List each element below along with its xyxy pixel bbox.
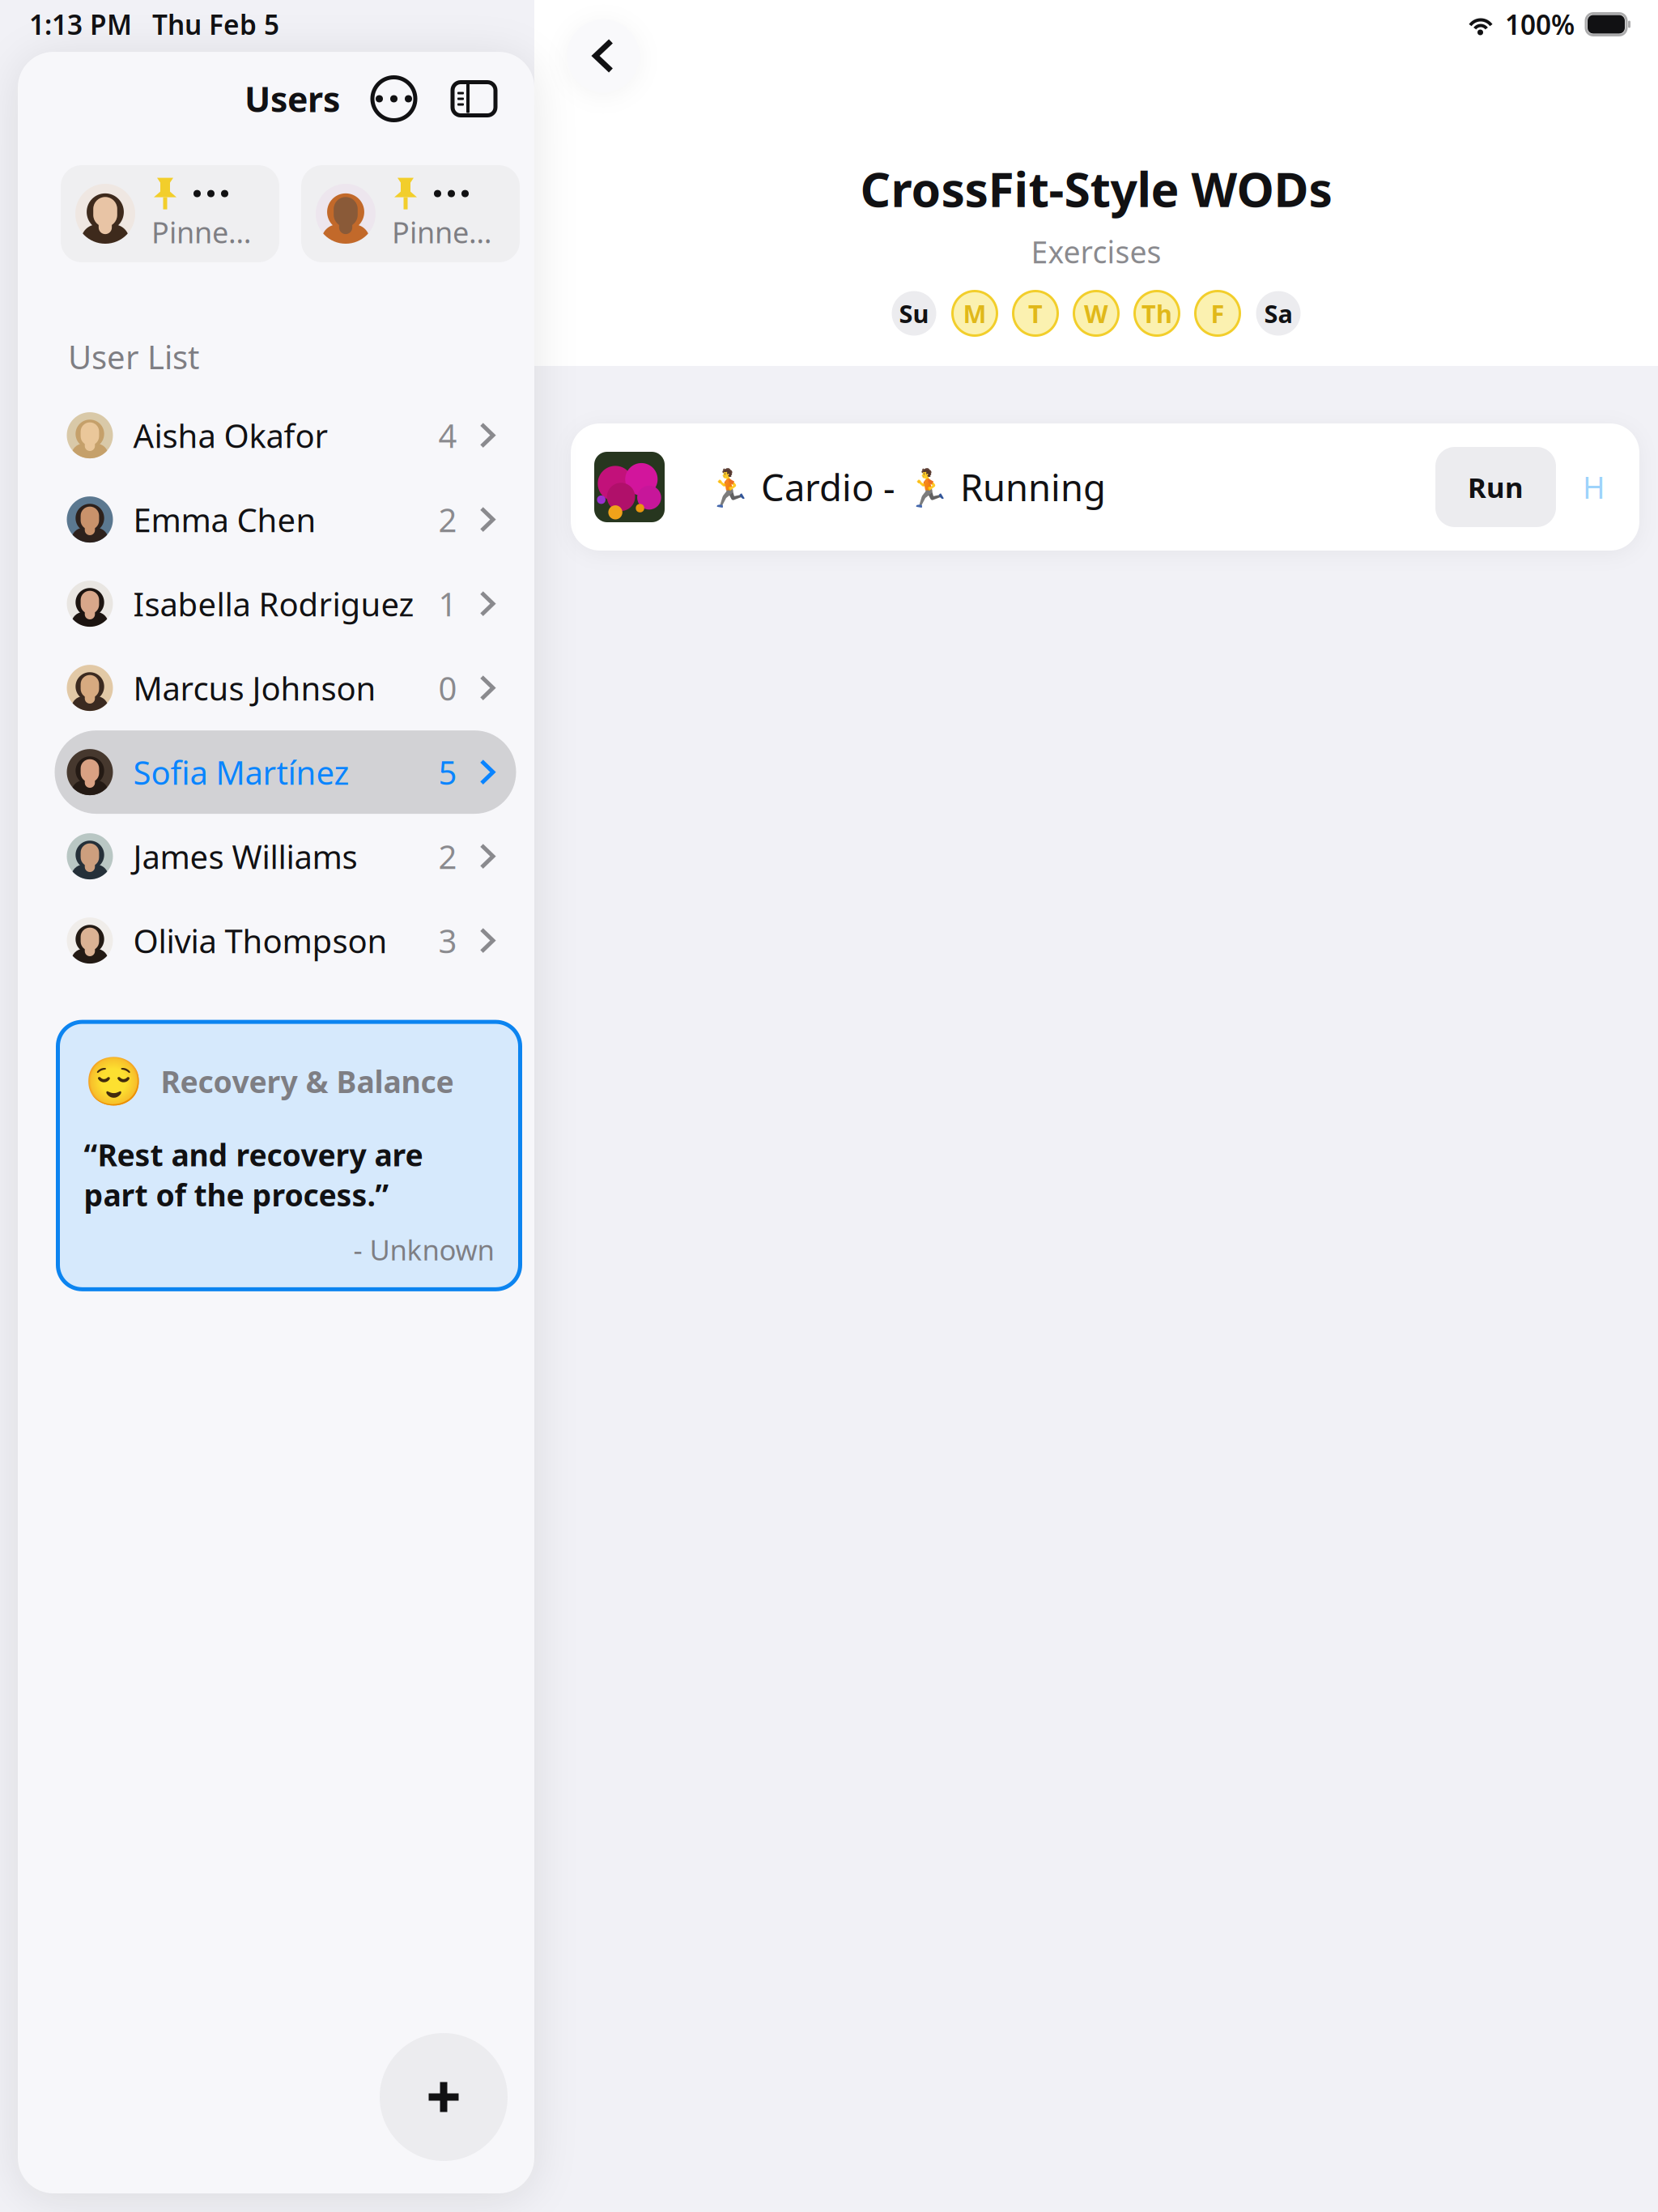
staticText: 1:13 PM bbox=[29, 6, 132, 42]
button[interactable]: Olivia Thompson bbox=[55, 899, 516, 982]
button[interactable]: W bbox=[1074, 291, 1118, 336]
staticText: Users bbox=[244, 76, 340, 122]
button[interactable]: Isabella Rodriguez bbox=[55, 562, 516, 645]
staticText: Sa bbox=[1264, 297, 1292, 330]
staticText: 0 bbox=[438, 666, 457, 709]
button[interactable]: T bbox=[1013, 291, 1058, 336]
staticText: Su bbox=[899, 297, 929, 330]
button[interactable]: Hide sidebar bbox=[453, 82, 495, 115]
staticText: Isabella Rodriguez bbox=[133, 582, 414, 625]
staticText: H bbox=[1583, 467, 1605, 507]
button[interactable]: F bbox=[1195, 291, 1240, 336]
staticText: 1 bbox=[438, 582, 457, 625]
button[interactable]: Pinne… bbox=[301, 165, 520, 262]
button[interactable]: Th bbox=[1135, 291, 1179, 336]
staticText: Aisha Okafor bbox=[133, 414, 328, 457]
button[interactable]: 🏃 Cardio - 🏃 Running bbox=[571, 423, 1639, 551]
button[interactable]: Pinne… bbox=[61, 165, 279, 262]
staticText: T bbox=[1028, 297, 1043, 330]
staticText: James Williams bbox=[133, 835, 357, 878]
staticText: 100% bbox=[1505, 6, 1575, 42]
button[interactable]: Marcus Johnson bbox=[55, 646, 516, 730]
staticText: M bbox=[963, 297, 986, 330]
staticText: User List bbox=[68, 335, 199, 378]
staticText: Thu Feb 5 bbox=[152, 6, 279, 42]
staticText: 2 bbox=[438, 498, 457, 541]
button[interactable]: Su bbox=[892, 291, 936, 336]
button[interactable]: Back bbox=[567, 19, 640, 92]
staticText: Pinne… bbox=[392, 213, 491, 251]
staticText: CrossFit-Style WODs bbox=[860, 157, 1332, 220]
staticText: Th bbox=[1141, 297, 1172, 330]
staticText: Olivia Thompson bbox=[133, 919, 387, 962]
button[interactable]: M bbox=[952, 291, 997, 336]
staticText: 3 bbox=[438, 919, 457, 962]
staticText: 2 bbox=[438, 835, 457, 878]
staticText: Run bbox=[1468, 468, 1524, 506]
staticText: 😌 bbox=[84, 1054, 143, 1109]
button[interactable]: Aisha Okafor bbox=[55, 394, 516, 477]
staticText: 5 bbox=[438, 751, 457, 794]
staticText: Emma Chen bbox=[133, 498, 316, 541]
button[interactable]: Add user bbox=[380, 2033, 508, 2161]
button[interactable]: James Williams bbox=[55, 815, 516, 898]
staticText: Exercises bbox=[1031, 231, 1161, 272]
button[interactable]: Sofia Martínez bbox=[55, 730, 516, 814]
staticText: - Unknown bbox=[353, 1231, 494, 1268]
staticText: Recovery & Balance bbox=[161, 1061, 454, 1101]
staticText: 4 bbox=[438, 414, 457, 457]
button[interactable]: Emma Chen bbox=[55, 478, 516, 561]
button[interactable]: Sa bbox=[1256, 291, 1301, 336]
staticText: “Rest and recovery are part of the proce… bbox=[84, 1135, 423, 1215]
staticText: Marcus Johnson bbox=[133, 666, 376, 709]
staticText: 🏃 Cardio - 🏃 Running bbox=[706, 463, 1106, 511]
button[interactable]: More options bbox=[372, 77, 415, 120]
staticText: Sofia Martínez bbox=[133, 751, 349, 794]
staticText: Pinne… bbox=[151, 213, 251, 251]
staticText: W bbox=[1084, 297, 1108, 330]
staticText: F bbox=[1211, 297, 1224, 330]
